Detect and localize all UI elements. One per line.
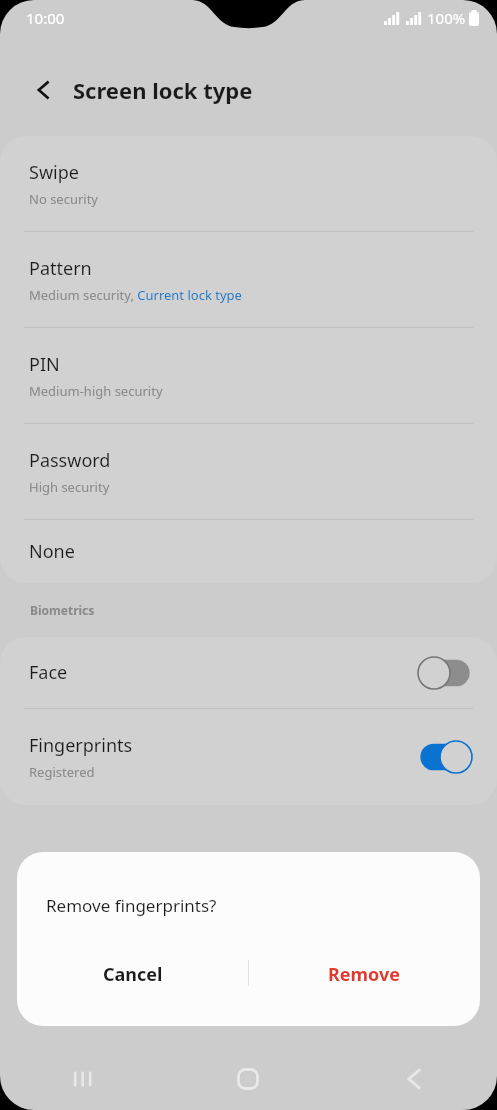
staticText: Biometrics (30, 602, 95, 618)
staticText: 100% (427, 8, 466, 28)
staticText: Screen lock type (73, 75, 253, 105)
staticText: Medium-high security (29, 382, 163, 400)
staticText: Pattern (29, 256, 92, 281)
staticText: Remove fingerprints? (46, 894, 217, 917)
button[interactable]: Cancel (17, 946, 248, 1002)
staticText: PIN (29, 352, 60, 377)
staticText: Remove (328, 962, 401, 987)
button[interactable]: Face (0, 637, 497, 708)
staticText: Registered (29, 763, 95, 781)
button[interactable]: Pattern (0, 232, 497, 327)
button[interactable]: Fingerprints on (417, 740, 473, 774)
staticText: Medium security, Current lock type (29, 286, 242, 304)
staticText: Cancel (103, 962, 163, 987)
button[interactable]: Fingerprints (0, 709, 497, 805)
staticText: High security (29, 478, 110, 496)
staticText: Password (29, 448, 111, 473)
button[interactable]: Face off (417, 656, 473, 690)
button[interactable]: Back (331, 1048, 497, 1110)
staticText: No security (29, 190, 99, 208)
staticText: 10:00 (26, 8, 65, 28)
staticText: Fingerprints (29, 733, 133, 758)
staticText: Face (29, 660, 68, 685)
button[interactable]: Back (22, 68, 66, 112)
button[interactable]: Password (0, 424, 497, 519)
button[interactable]: Home (165, 1048, 331, 1110)
button[interactable]: Swipe (0, 136, 497, 231)
staticText: None (29, 539, 75, 564)
button[interactable]: Remove (248, 946, 480, 1002)
button[interactable]: PIN (0, 328, 497, 423)
staticText: Swipe (29, 160, 79, 185)
button[interactable]: None (0, 520, 497, 582)
button[interactable]: Recents (0, 1048, 165, 1110)
